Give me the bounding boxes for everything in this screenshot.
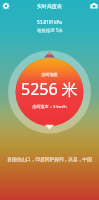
staticText: 当前速度：3 km/h: [32, 104, 67, 110]
staticText: 当前海拔: [41, 72, 58, 77]
staticText: 53.8101kPa: [37, 19, 62, 25]
staticText: 喜德拉山口，印度阿萨姆邦，沃县，中国: [0, 156, 99, 162]
staticText: 海拔精度 5米: [37, 27, 63, 33]
button[interactable]: Settings: [1, 1, 10, 10]
button[interactable]: Camera: [89, 1, 98, 10]
staticText: 实时高度表: [37, 3, 62, 9]
staticText: 5256 米: [21, 78, 78, 100]
